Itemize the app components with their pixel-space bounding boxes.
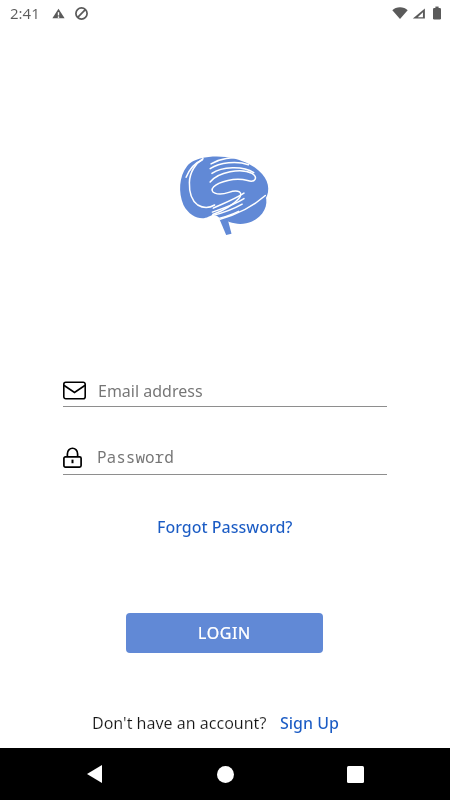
staticText: LOGIN <box>198 622 251 644</box>
button[interactable]: Recent apps <box>323 748 387 800</box>
button[interactable]: Back <box>62 748 126 800</box>
staticText: Don't have an account? <box>92 712 267 734</box>
staticText: Sign Up <box>280 712 339 734</box>
button[interactable]: Home <box>193 748 257 800</box>
button[interactable]: Password <box>63 439 387 475</box>
button[interactable]: LOGIN <box>126 613 323 653</box>
staticText: Email address <box>98 380 203 402</box>
button[interactable]: Sign Up <box>280 712 339 734</box>
staticText: Password <box>97 446 174 468</box>
staticText: 2:41 <box>10 3 40 23</box>
button[interactable]: Email address <box>63 374 387 407</box>
staticText: Forgot Password? <box>157 516 293 538</box>
button[interactable]: Forgot Password? <box>151 513 299 541</box>
